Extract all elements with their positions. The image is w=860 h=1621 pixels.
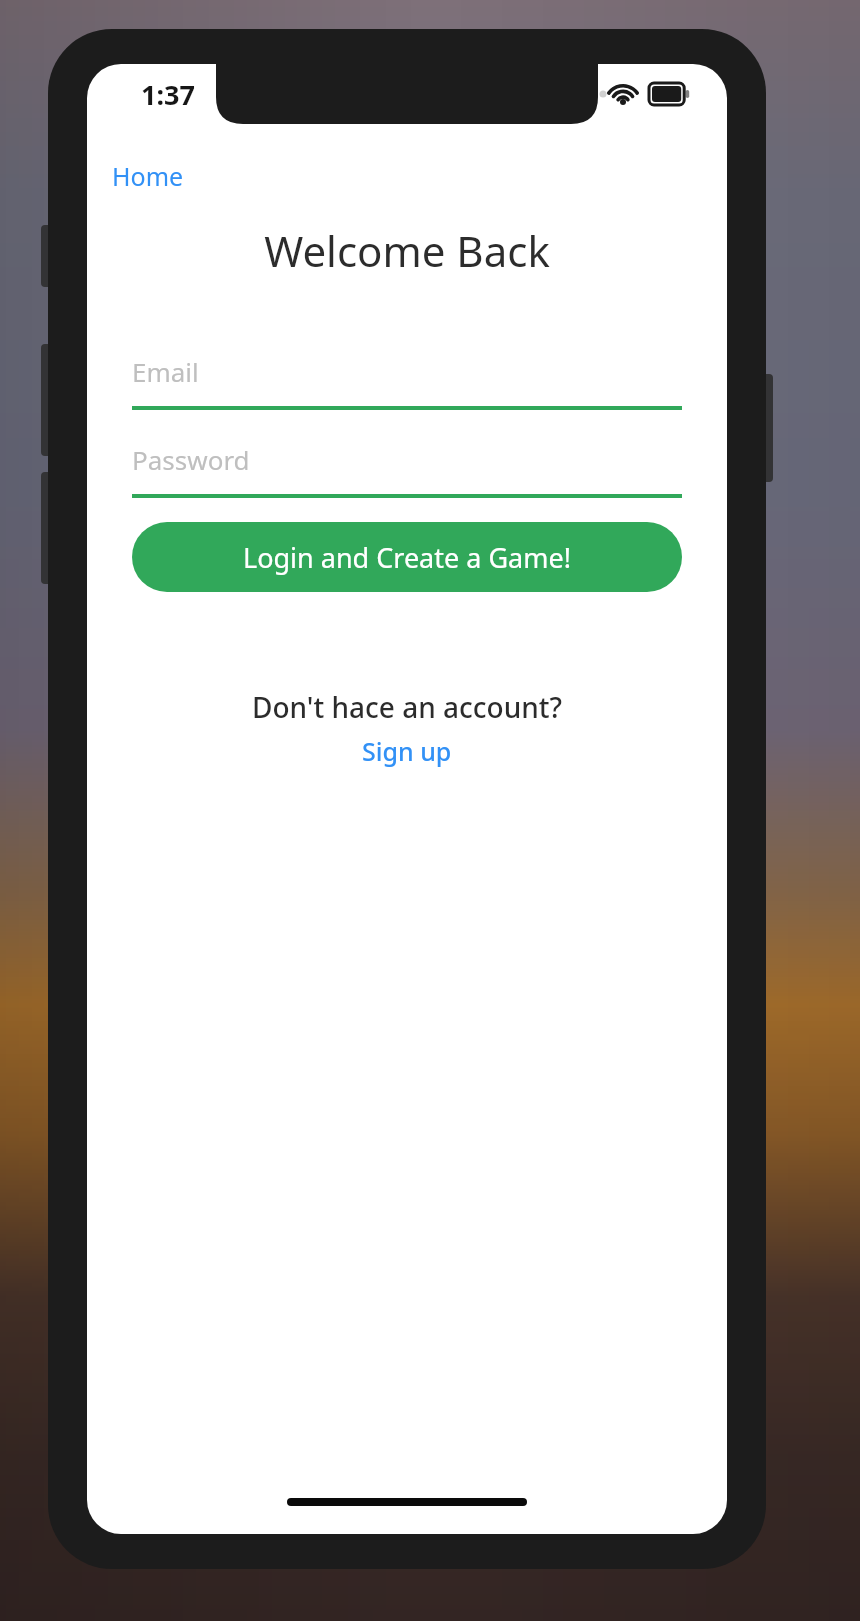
button[interactable]: Email [132,354,682,410]
other: Wi-Fi [608,82,638,106]
staticText: Login and Create a Game! [243,539,571,576]
staticText: 1:37 [141,76,195,113]
button[interactable]: Password [132,442,682,498]
staticText: Password [132,442,250,477]
other: Cellular signal [556,84,598,104]
staticText: Email [132,354,199,389]
other: Battery [649,83,689,105]
staticText: Sign up [362,734,452,768]
staticText: Don't hace an account? [87,688,727,726]
button[interactable]: Login and Create a Game! [132,522,682,592]
staticText: Welcome Back [87,222,727,279]
button[interactable]: Sign up [356,732,458,770]
button[interactable]: Home [110,156,186,196]
staticText: Home [112,159,184,193]
